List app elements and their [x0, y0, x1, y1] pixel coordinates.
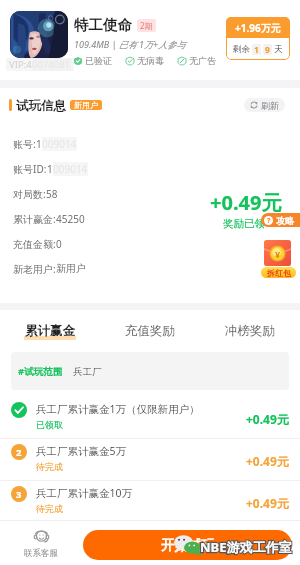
button[interactable]: 刷新 [244, 98, 285, 112]
staticText: 2期 [140, 20, 153, 31]
staticText: +0.49元 [246, 495, 289, 511]
staticText: +0.49元 [246, 453, 289, 469]
button[interactable]: 冲榜奖励 [200, 318, 300, 343]
staticText: 1 [254, 44, 259, 55]
button[interactable]: 2 [11, 444, 289, 480]
staticText: 累计赢金: [13, 212, 56, 226]
staticText: 对局数: [13, 187, 46, 201]
staticText: 联系客服 [24, 548, 58, 559]
staticText: 天 [274, 44, 283, 55]
button[interactable]: 兵工厂累计赢金1万（仅限新用户） [11, 402, 289, 438]
button[interactable]: 累计赢金 [0, 318, 100, 343]
staticText: 兵工厂累计赢金5万 [36, 444, 127, 458]
staticText: 新用户 [74, 100, 98, 110]
staticText: 58 [46, 187, 58, 201]
staticText: 兵工厂累计赢金10万 [36, 486, 133, 500]
staticText: 新老用户: [13, 262, 56, 276]
staticText: VIP:4 [9, 58, 32, 71]
staticText: 累计赢金 [25, 323, 75, 339]
staticText: +0.49元 [210, 189, 282, 216]
staticText: 45250 [56, 212, 85, 226]
staticText: +0.49元 [246, 411, 289, 427]
staticText: 奖励已领 [223, 217, 265, 230]
staticText: +1.96万元 [235, 21, 281, 35]
staticText: 试玩信息 [16, 98, 66, 112]
staticText: NBE游戏工作室 [200, 538, 292, 556]
staticText: 兵工厂 [73, 366, 102, 378]
staticText: 账号ID: [13, 162, 47, 176]
button[interactable]: 开始试玩 [83, 530, 292, 560]
staticText: 开始试玩 [161, 537, 215, 554]
button[interactable]: +1.96万元 [226, 17, 290, 60]
staticText: 剩余 [233, 44, 250, 55]
staticText: #试玩范围 [18, 365, 63, 378]
staticText: 账号: [13, 137, 36, 151]
other: 拆红包 [261, 240, 300, 278]
staticText: 特工使命 [74, 16, 132, 34]
staticText: 新用户 [56, 262, 86, 275]
staticText: 3 [16, 488, 22, 501]
staticText: 无广告 [189, 55, 216, 66]
staticText: 充值金额: [13, 237, 56, 251]
button[interactable]: 3 [11, 486, 289, 520]
staticText: 109.4MB | 已有 1万+人参与 [74, 38, 186, 50]
staticText: 待完成 [36, 461, 63, 472]
staticText: 0 [56, 237, 62, 251]
staticText: ¥ [275, 248, 281, 260]
staticText: 刷新 [261, 100, 279, 111]
staticText: 1 [47, 162, 53, 176]
button[interactable]: 拆红包 [261, 267, 296, 278]
staticText: 0074081 [32, 58, 71, 71]
staticText: ? [267, 216, 271, 225]
staticText: 已验证 [85, 55, 112, 66]
staticText: 充值奖励 [125, 323, 175, 339]
staticText: 攻略 [276, 215, 294, 226]
staticText: 1 [36, 137, 42, 151]
staticText: 兵工厂累计赢金1万（仅限新用户） [36, 402, 200, 416]
staticText: 9 [265, 44, 270, 55]
staticText: 009014 [42, 137, 77, 151]
staticText: NBE游戏工作室 [200, 538, 292, 556]
staticText: 无病毒 [137, 55, 164, 66]
staticText: 待完成 [36, 503, 63, 514]
staticText: 冲榜奖励 [225, 323, 275, 339]
button[interactable]: 联系客服 [18, 529, 64, 559]
staticText: 2 [16, 446, 22, 459]
staticText: 已领取 [36, 419, 63, 430]
button[interactable]: 充值奖励 [100, 318, 200, 343]
staticText: 009014 [53, 162, 88, 176]
button[interactable]: ? [261, 213, 300, 227]
staticText: 拆红包 [267, 268, 291, 278]
